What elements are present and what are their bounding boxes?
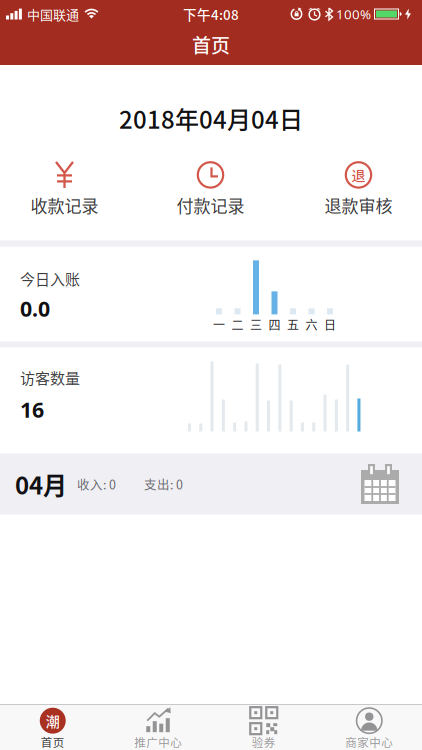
button[interactable]: 验券 [211,706,316,749]
staticText: 0.0 [20,294,50,323]
button[interactable]: 商家中心 [316,706,422,749]
staticText: 首页 [192,33,230,56]
staticText: 访客数量 [20,369,80,386]
staticText: 04月 [15,470,67,498]
staticText: 下午4:08 [183,6,239,22]
staticText: 今日入账 [20,270,80,287]
button[interactable]: 潮 [0,706,105,749]
button[interactable]: 选择月份 [361,464,399,504]
staticText: 退 [351,167,365,183]
staticText: 2018年04月04日 [119,104,303,132]
staticText: 四 [268,317,280,332]
staticText: 退款审核 [324,195,392,215]
button[interactable]: 收款记录 [30,161,98,215]
button[interactable]: 推广中心 [105,706,211,749]
staticText: 六 [305,317,317,332]
staticText: 推广中心 [134,735,182,749]
staticText: 16 [20,395,44,424]
staticText: 一 [213,317,225,332]
staticText: 商家中心 [345,735,393,749]
staticText: 日 [324,317,336,332]
staticText: 潮 [46,712,60,729]
button[interactable]: 退 [324,161,392,215]
staticText: 付款记录 [176,195,244,215]
staticText: 验券 [252,735,276,749]
staticText: 二 [231,317,243,332]
staticText: 100% [336,5,371,23]
staticText: 支出: 0 [144,477,183,491]
button[interactable]: 付款记录 [176,161,244,215]
staticText: 首页 [41,735,65,749]
staticText: 收入: 0 [77,477,116,491]
staticText: 收款记录 [30,195,98,215]
staticText: 中国联通 [27,6,79,22]
staticText: 五 [287,317,299,332]
staticText: 三 [250,317,262,332]
